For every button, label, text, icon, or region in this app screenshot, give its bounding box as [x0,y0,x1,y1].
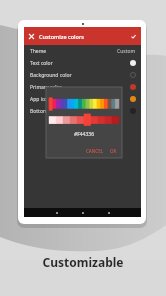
staticText: Bottom nav color [30,108,71,115]
staticText: Custom [117,48,136,55]
button[interactable]: App icon color [24,93,141,105]
staticText: App icon color [30,96,64,103]
button[interactable]: Theme [24,45,141,57]
button[interactable]: OK [108,146,119,156]
staticText: Primary color [30,84,62,91]
button[interactable]: Close [27,32,36,41]
staticText: Theme [30,48,47,55]
staticText: #F44336 [46,131,122,138]
button[interactable]: Background color [24,69,141,81]
button[interactable]: Text color [24,57,141,69]
button[interactable]: Primary color [24,81,141,93]
button[interactable]: CANCEL [84,146,106,156]
staticText: Customizable [0,254,166,270]
staticText: Customize colors [39,33,84,40]
button[interactable]: Done [128,31,138,41]
button[interactable]: Bottom nav color [24,105,141,117]
staticText: Background color [30,72,72,79]
staticText: Text color [30,60,53,67]
